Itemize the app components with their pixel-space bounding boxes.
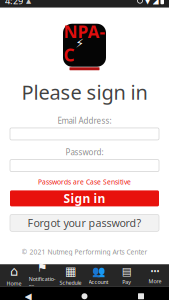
staticText: Forgot your password? <box>27 216 141 230</box>
button[interactable]: Recent apps <box>113 286 169 300</box>
button[interactable]: Home <box>0 264 28 286</box>
staticText: Sign in <box>63 190 105 206</box>
button[interactable]: Back <box>0 286 56 300</box>
staticText: Password: <box>65 147 103 157</box>
staticText: Passwords are Case Sensitive <box>38 178 131 186</box>
staticText: © 2021 Nutmeg Performing Arts Center <box>21 247 147 256</box>
button[interactable]: Account <box>84 264 113 286</box>
staticText: ••• <box>150 266 159 276</box>
staticText: ◢ <box>152 0 158 5</box>
button[interactable]: Pay <box>113 264 141 286</box>
button[interactable]: Schedule <box>56 264 84 286</box>
button[interactable]: Forgot your password? <box>10 214 159 231</box>
staticText: 4:29 <box>5 0 23 7</box>
staticText: ▼ <box>144 0 150 5</box>
staticText: ▤ <box>122 265 132 277</box>
staticText: Account <box>89 278 109 285</box>
staticText: ▦ <box>65 264 76 278</box>
staticText: 👥 <box>92 265 105 277</box>
button[interactable]: Notifications <box>28 264 56 286</box>
staticText: ◀ <box>24 291 31 300</box>
staticText: ⚑ <box>37 261 48 274</box>
staticText: Pay <box>122 278 131 285</box>
staticText: ⌂ <box>10 264 18 279</box>
staticText: Please sign in <box>21 79 147 105</box>
button[interactable]: Home <box>56 286 113 300</box>
button[interactable]: Sign in <box>10 190 159 206</box>
staticText: Schedule <box>59 279 81 286</box>
staticText: ⚡︎ <box>75 36 83 50</box>
button[interactable]: More <box>141 264 169 286</box>
staticText: NPAC <box>63 20 105 66</box>
staticText: Email Address: <box>57 115 111 126</box>
staticText: Home <box>7 280 22 287</box>
staticText: More <box>148 277 161 285</box>
staticText: ▲ <box>26 0 31 5</box>
staticText: Notifications <box>29 275 56 290</box>
